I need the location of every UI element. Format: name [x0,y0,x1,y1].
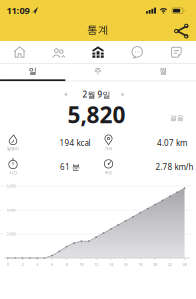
staticText: 0 [7,262,9,267]
staticText: 18 [138,262,142,267]
staticText: 일 [29,66,37,76]
button[interactable] [60,90,70,99]
staticText: 속도 [104,170,112,175]
button[interactable] [50,44,68,60]
staticText: 8 [66,262,68,267]
button[interactable]: 월 [131,63,196,79]
staticText: 4.07 km [157,138,187,148]
staticText: 6 [51,262,53,267]
staticText: 거리 [104,146,112,151]
button[interactable] [12,44,28,60]
staticText: 6,000 [6,183,15,189]
staticText: 주 [94,66,102,76]
staticText: 20 [153,262,157,267]
staticText: 칼로리 [7,146,19,151]
staticText: 24 [183,262,187,267]
button[interactable] [172,21,190,39]
staticText: 시간 [9,170,17,175]
staticText: 월 [159,66,167,76]
button[interactable] [129,44,145,60]
staticText: 5,820 [67,99,125,129]
staticText: 4 [36,262,38,267]
button[interactable] [118,90,128,99]
button[interactable] [90,44,106,60]
button[interactable]: 주 [65,63,131,79]
staticText: 2월 9일 [82,89,110,100]
staticText: 2.78 km/h [155,162,193,172]
staticText: 10 [79,262,83,267]
staticText: 14 [109,262,113,267]
staticText: 16 [124,262,128,267]
staticText: 12 [94,262,98,267]
staticText: 걸음 [170,114,184,122]
staticText: 2 [21,262,23,267]
staticText: 61 분 [60,162,80,172]
staticText: 194 kcal [59,138,90,148]
staticText: 22 [168,262,172,267]
staticText: 통계 [87,23,109,36]
staticText: 11:09 [6,4,29,17]
staticText: 4,000 [6,207,15,213]
button[interactable] [168,44,184,60]
staticText: 2,000 [6,231,15,237]
button[interactable]: 일 [0,63,65,79]
